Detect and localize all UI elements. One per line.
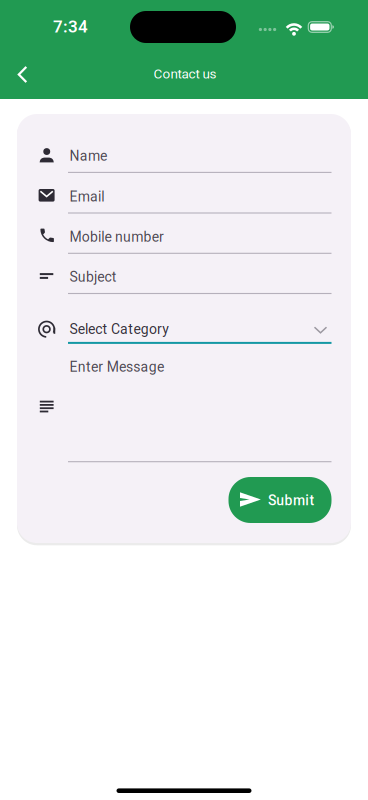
staticText: Contact us bbox=[153, 66, 216, 82]
staticText: Select Category bbox=[69, 321, 169, 337]
staticText: Enter Message bbox=[69, 359, 164, 375]
staticText: Subject bbox=[69, 269, 117, 285]
staticText: 7:34 bbox=[53, 17, 88, 37]
staticText: Mobile number bbox=[69, 229, 164, 245]
staticText: Name bbox=[69, 148, 107, 164]
staticText: Email bbox=[69, 188, 104, 205]
staticText: Submit bbox=[268, 492, 314, 509]
